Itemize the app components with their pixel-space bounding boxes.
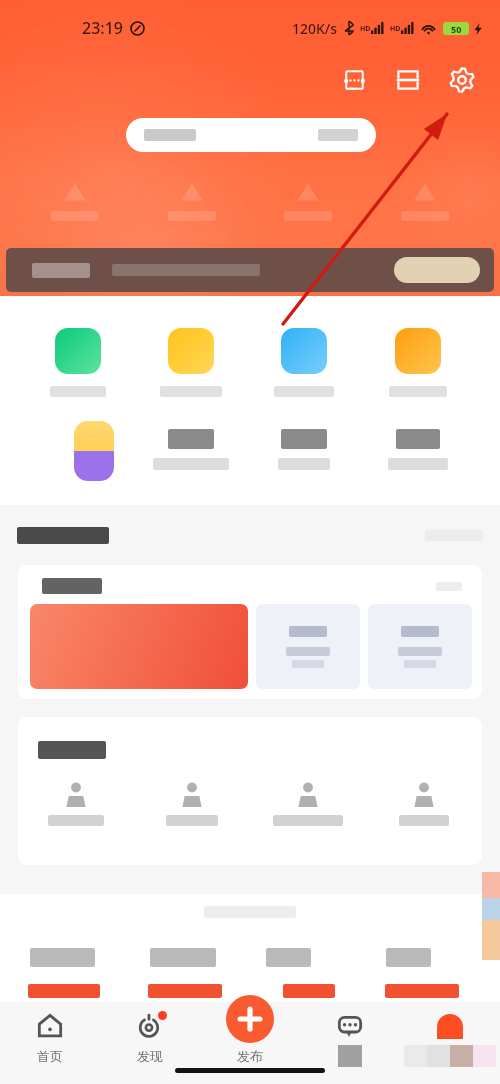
- button[interactable]: Tile: [368, 604, 472, 689]
- button[interactable]: Tile: [256, 604, 360, 689]
- staticText: 发现: [137, 1048, 163, 1064]
- button[interactable]: App: [134, 421, 247, 470]
- other: Home: [37, 1013, 63, 1039]
- other: Discover: [137, 1013, 163, 1039]
- staticText: HD: [390, 24, 401, 34]
- staticText: 发布: [237, 1048, 263, 1064]
- button[interactable]: App: [361, 328, 475, 397]
- button[interactable]: Quick action: [255, 178, 361, 221]
- button[interactable]: App: [361, 421, 475, 470]
- staticText: 23:19: [82, 17, 123, 39]
- button[interactable]: Quick action: [139, 178, 245, 221]
- staticText: 首页: [37, 1048, 63, 1064]
- staticText: 120K/s: [292, 19, 338, 38]
- button[interactable]: App: [247, 328, 361, 397]
- button[interactable]: Publish: [200, 1005, 300, 1069]
- button[interactable]: Quick action: [372, 178, 478, 221]
- button[interactable]: Discover: [100, 1005, 200, 1069]
- button[interactable]: Settings: [440, 58, 484, 102]
- button[interactable]: App: [21, 421, 134, 481]
- button[interactable]: Promo: [30, 604, 248, 689]
- button[interactable]: Publish: [226, 995, 274, 1043]
- button[interactable]: [126, 118, 376, 152]
- other: Profile: [437, 1013, 463, 1039]
- staticText: HD: [360, 24, 371, 34]
- button[interactable]: Profile: [400, 1005, 500, 1069]
- button[interactable]: Service: [250, 781, 366, 826]
- staticText: 50: [451, 23, 462, 35]
- button[interactable]: Customer service: [332, 58, 376, 102]
- button[interactable]: Messages: [300, 1005, 400, 1069]
- button[interactable]: App: [21, 328, 134, 397]
- button[interactable]: Scan: [386, 58, 430, 102]
- button[interactable]: App: [134, 328, 247, 397]
- button[interactable]: [6, 248, 494, 292]
- other: Messages: [337, 1013, 363, 1039]
- button[interactable]: Service: [18, 781, 134, 826]
- button[interactable]: Service: [366, 781, 482, 826]
- button[interactable]: App: [247, 421, 361, 470]
- button[interactable]: Service: [134, 781, 250, 826]
- button[interactable]: Home: [0, 1005, 100, 1069]
- button[interactable]: Quick action: [22, 178, 128, 221]
